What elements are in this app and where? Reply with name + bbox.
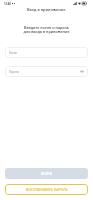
button[interactable]: ВОЙТИ — [5, 168, 88, 179]
staticText: Вход в приложение — [27, 7, 66, 12]
button[interactable]: ВОССТАНОВИТЬ ПАРОЛЬ — [5, 184, 88, 195]
button[interactable]: Показать пароль — [78, 68, 85, 75]
staticText: Пароль — [9, 70, 20, 74]
staticText: Введите логин и пароль для входа в прило… — [0, 25, 93, 34]
staticText: ВОЙТИ — [41, 172, 53, 176]
button[interactable]: Пароль — [5, 66, 88, 77]
button[interactable]: Логин — [5, 47, 88, 58]
staticText: Логин — [9, 51, 18, 55]
staticText: ВОССТАНОВИТЬ ПАРОЛЬ — [26, 187, 68, 192]
staticText: 13:48 — [4, 2, 11, 6]
